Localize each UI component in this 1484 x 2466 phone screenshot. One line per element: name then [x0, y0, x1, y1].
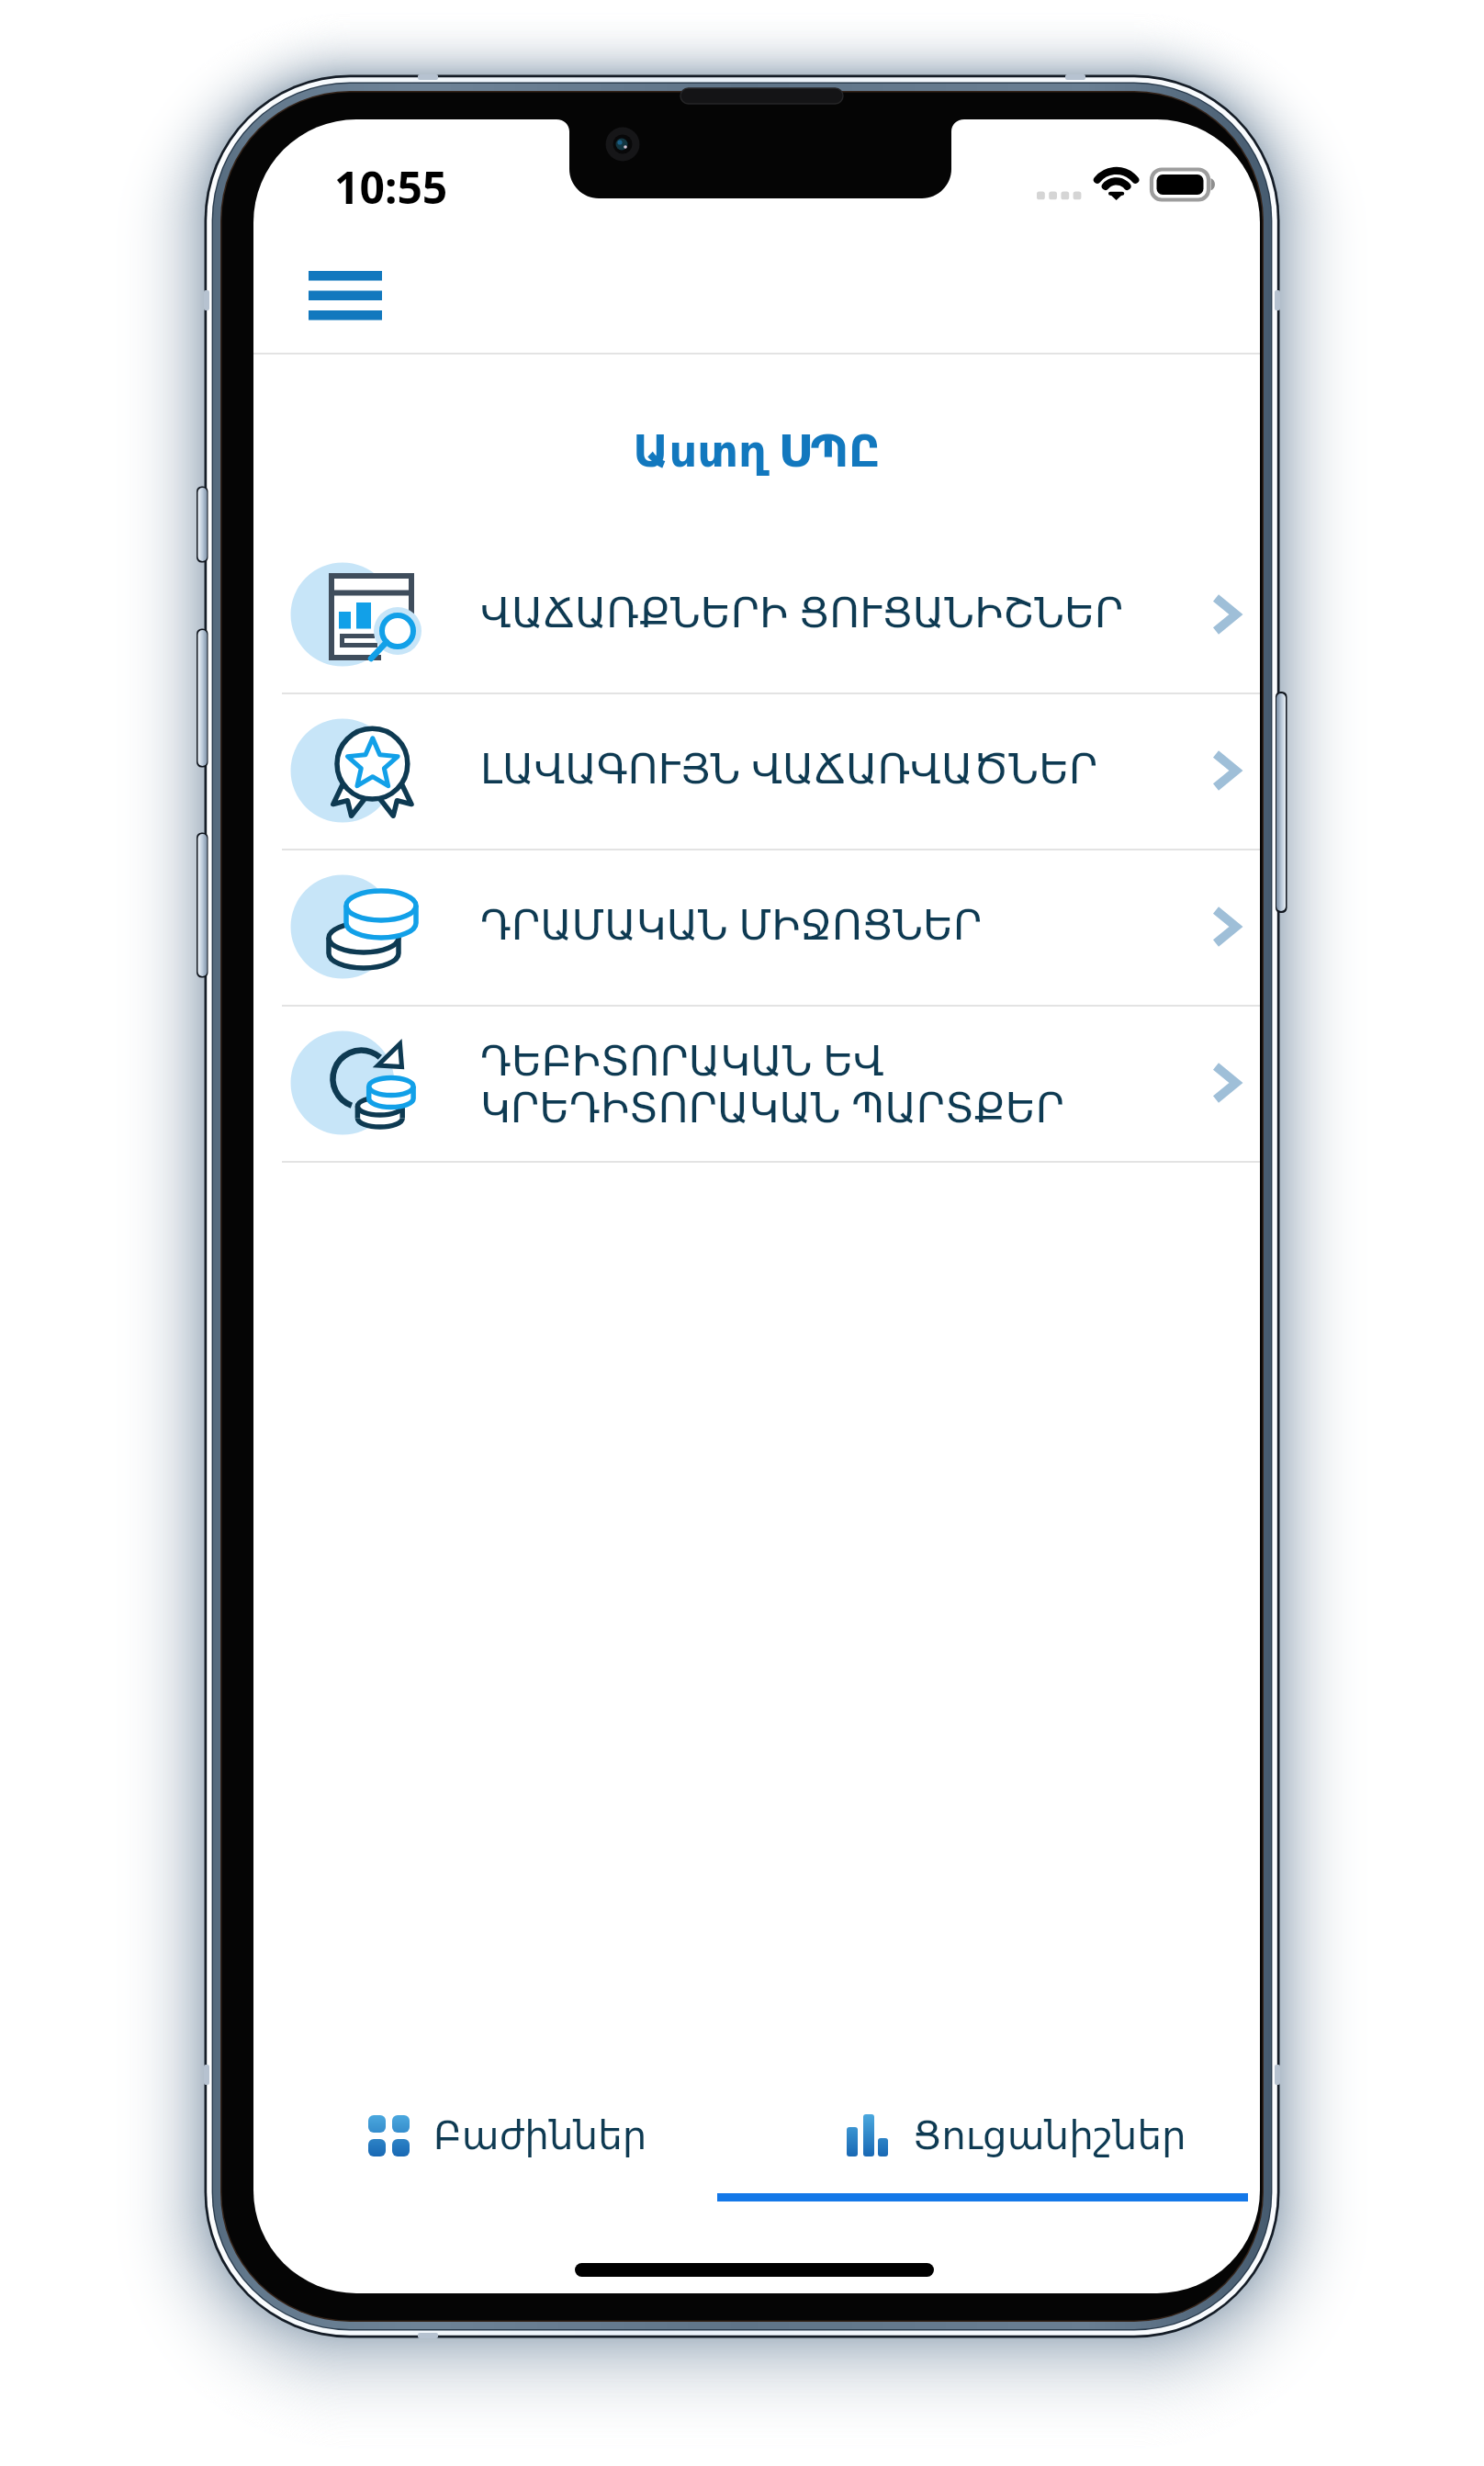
staticText: Աստղ ՍՊԸ: [253, 420, 1260, 479]
button[interactable]: Menu: [290, 253, 400, 337]
button[interactable]: ԴԵԲԻՏՈՐԱԿԱՆ ԵՎ ԿՐԵԴԻՏՈՐԱԿԱՆ ՊԱՐՏՔԵՐ: [253, 1005, 1260, 1161]
button[interactable]: ԴՐԱՄԱԿԱՆ ՄԻՋՈՑՆԵՐ: [253, 849, 1260, 1005]
staticText: Ցուցանիշներ: [913, 2113, 1186, 2158]
button[interactable]: ԼԱՎԱԳՈՒՅՆ ՎԱՃԱՌՎԱԾՆԵՐ: [253, 693, 1260, 849]
staticText: ՎԱՃԱՌՔՆԵՐԻ ՑՈՒՑԱՆԻՇՆԵՐ: [480, 583, 1197, 639]
staticText: ԼԱՎԱԳՈՒՅՆ ՎԱՃԱՌՎԱԾՆԵՐ: [480, 739, 1197, 795]
button[interactable]: ՎԱՃԱՌՔՆԵՐԻ ՑՈՒՑԱՆԻՇՆԵՐ: [253, 536, 1260, 693]
staticText: 10:55: [334, 157, 448, 217]
button[interactable]: Բաժիններ: [350, 2085, 717, 2186]
staticText: ԴՐԱՄԱԿԱՆ ՄԻՋՈՑՆԵՐ: [480, 895, 1197, 951]
staticText: Բաժիններ: [433, 2113, 647, 2158]
button[interactable]: Ցուցանիշներ: [828, 2085, 1260, 2186]
staticText: ԴԵԲԻՏՈՐԱԿԱՆ ԵՎ ԿՐԵԴԻՏՈՐԱԿԱՆ ՊԱՐՏՔԵՐ: [480, 1031, 1197, 1134]
